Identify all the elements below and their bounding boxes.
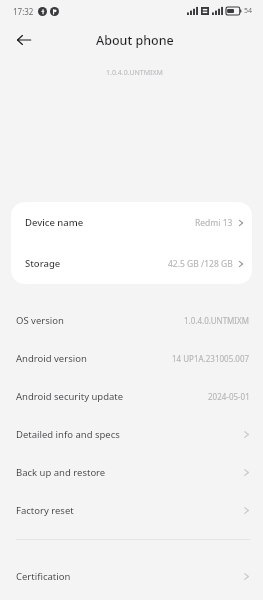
- button[interactable]: Device name: [11, 202, 252, 243]
- staticText: 42.5 GB /128 GB: [168, 258, 233, 270]
- button[interactable]: Certification: [0, 557, 263, 595]
- staticText: 1.0.4.0.UNTMIXM: [184, 315, 250, 326]
- staticText: 14 UP1A.231005.007: [172, 353, 250, 364]
- staticText: Storage: [25, 257, 61, 270]
- staticText: 2024-05-01: [208, 391, 250, 402]
- button[interactable]: Back: [10, 26, 38, 54]
- staticText: Factory reset: [16, 504, 74, 517]
- staticText: Redmi 13: [195, 217, 233, 229]
- staticText: Android version: [16, 352, 87, 365]
- staticText: 17:32: [13, 6, 34, 17]
- staticText: Back up and restore: [16, 466, 106, 479]
- button[interactable]: Back up and restore: [0, 453, 263, 491]
- staticText: Android security update: [16, 390, 124, 403]
- button[interactable]: Android security update: [0, 377, 263, 415]
- staticText: 1.0.4.0.UNTMIXM: [106, 68, 163, 78]
- staticText: Device name: [25, 216, 84, 229]
- button[interactable]: OS version: [0, 301, 263, 339]
- staticText: Detailed info and specs: [16, 428, 120, 441]
- button[interactable]: Android version: [0, 339, 263, 377]
- button[interactable]: Factory reset: [0, 491, 263, 529]
- button[interactable]: Detailed info and specs: [0, 415, 263, 453]
- staticText: About phone: [96, 32, 174, 49]
- staticText: 54: [244, 6, 253, 16]
- button[interactable]: Storage: [11, 243, 252, 284]
- staticText: Certification: [16, 570, 71, 583]
- staticText: OS version: [16, 314, 64, 327]
